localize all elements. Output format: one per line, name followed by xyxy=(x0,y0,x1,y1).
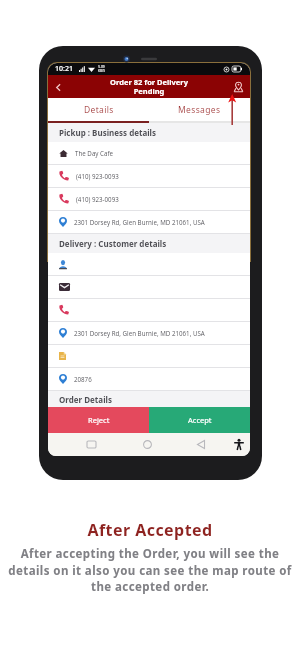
button[interactable]: Accept xyxy=(149,407,250,433)
staticText: Reject xyxy=(88,415,110,425)
button[interactable] xyxy=(48,253,250,275)
staticText: Details xyxy=(84,104,114,116)
button[interactable]: Home xyxy=(136,433,158,456)
button[interactable]: Messages xyxy=(149,98,250,121)
button[interactable]: Delivery person xyxy=(230,79,246,95)
staticText: Messages xyxy=(178,104,221,116)
staticText: Delivery : Customer details xyxy=(59,238,167,249)
button[interactable]: (410) 923-0093 xyxy=(48,188,250,210)
staticText: Order 82 for Delivery Pending xyxy=(110,77,188,96)
staticText: 20876 xyxy=(74,375,92,383)
button[interactable]: 2301 Dorsey Rd, Glen Burnie, MD 21061, U… xyxy=(48,322,250,344)
staticText: After Accepted xyxy=(87,519,213,541)
button[interactable]: Back xyxy=(190,433,212,456)
staticText: Order Details xyxy=(59,394,112,405)
staticText: 10:21 xyxy=(55,64,73,74)
button[interactable]: Accessibility xyxy=(229,433,249,456)
button[interactable]: Recents xyxy=(80,433,102,456)
button[interactable]: (410) 923-0093 xyxy=(48,165,250,187)
staticText: 2301 Dorsey Rd, Glen Burnie, MD 21061, U… xyxy=(74,329,205,337)
button[interactable]: Back xyxy=(48,77,68,97)
button[interactable]: 2301 Dorsey Rd, Glen Burnie, MD 21061, U… xyxy=(48,211,250,233)
staticText: 2301 Dorsey Rd, Glen Burnie, MD 21061, U… xyxy=(74,218,205,226)
button[interactable]: The Day Cafe xyxy=(48,142,250,164)
button[interactable]: Reject xyxy=(48,407,149,433)
staticText: 5.09 KB/S xyxy=(98,65,105,73)
button[interactable] xyxy=(48,276,250,298)
button[interactable]: Details xyxy=(48,98,149,121)
button[interactable] xyxy=(48,299,250,321)
staticText: (410) 923-0093 xyxy=(76,195,119,203)
staticText: (410) 923-0093 xyxy=(76,172,119,180)
staticText: Pickup : Business details xyxy=(59,127,157,138)
button[interactable]: 20876 xyxy=(48,368,250,390)
button[interactable] xyxy=(48,345,250,367)
staticText: After accepting the Order, you will see … xyxy=(7,546,293,594)
staticText: Accept xyxy=(188,415,212,425)
staticText: The Day Cafe xyxy=(75,149,114,157)
